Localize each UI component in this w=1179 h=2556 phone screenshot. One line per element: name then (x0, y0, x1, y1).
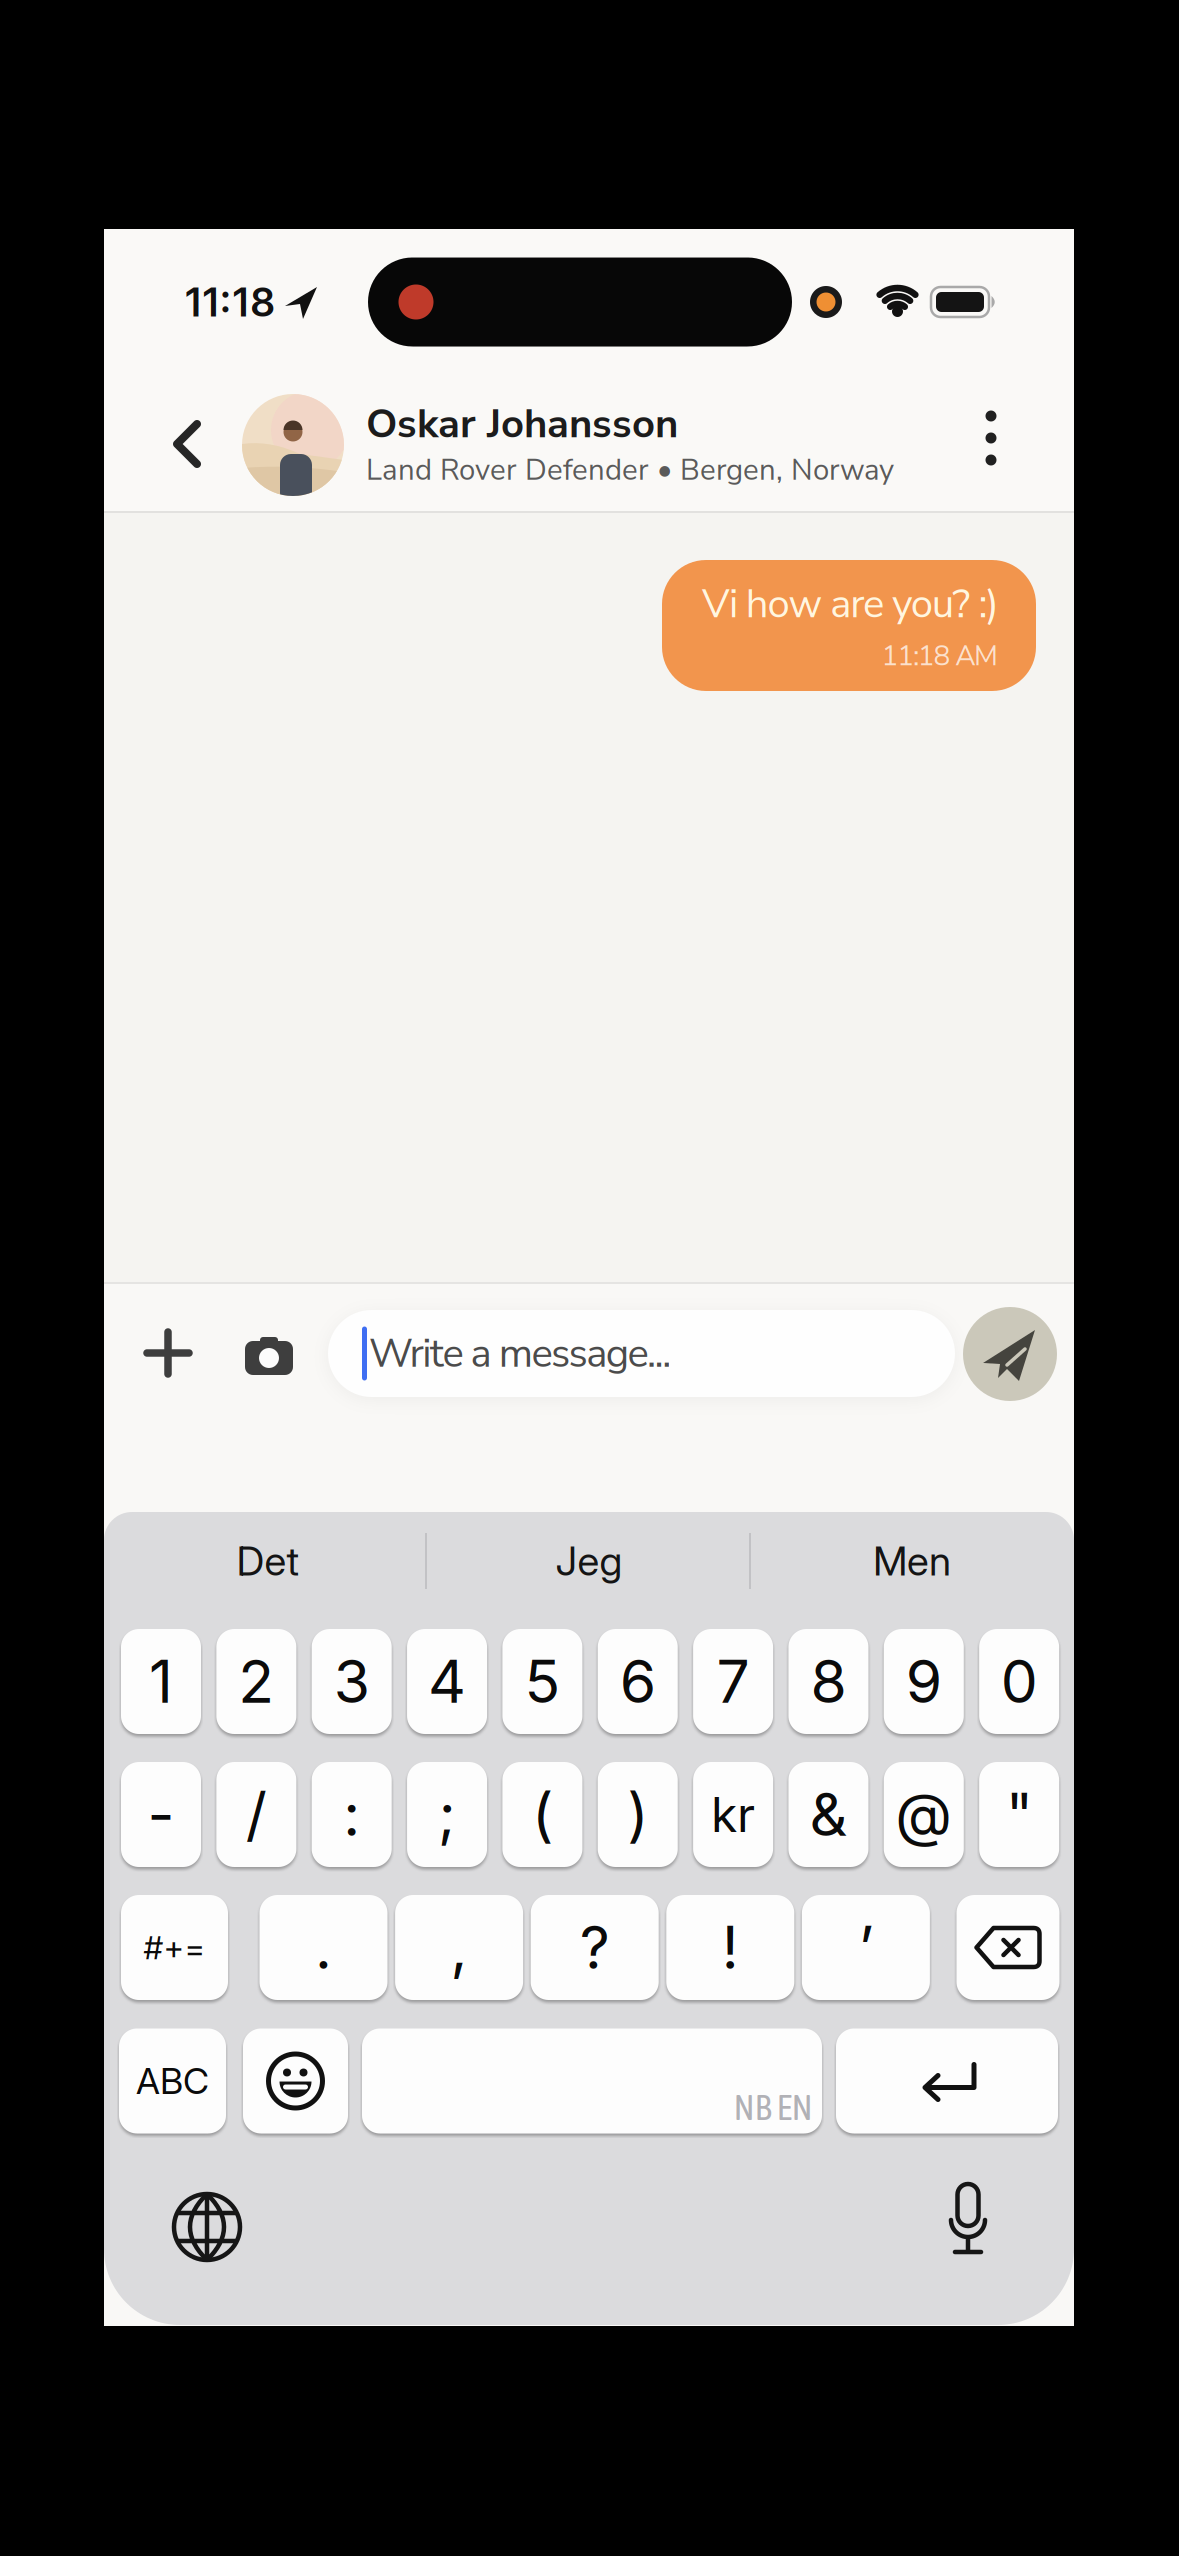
button[interactable]: Land Rover Defender • Bergen, Norway (366, 450, 966, 490)
button[interactable]: Write a message (328, 1310, 955, 1397)
staticText: NB EN (733, 2086, 812, 2128)
staticText: - (147, 1779, 174, 1850)
button[interactable]: 6 (598, 1629, 678, 1734)
button[interactable]: & (788, 1762, 868, 1867)
button[interactable]: : (312, 1762, 392, 1867)
staticText: 2 (238, 1646, 274, 1717)
button[interactable]: 7 (693, 1629, 773, 1734)
staticText: 6 (620, 1646, 656, 1717)
staticText: " (1006, 1779, 1033, 1850)
button[interactable]: , (395, 1895, 523, 2000)
button[interactable]: Det (118, 1526, 418, 1596)
staticText: 0 (1001, 1646, 1038, 1717)
button[interactable]: Back (157, 404, 217, 484)
button[interactable]: Oskar Johansson (366, 400, 966, 448)
staticText: ? (580, 1912, 610, 1983)
staticText: ( (532, 1779, 553, 1850)
button[interactable]: ABC (119, 2028, 226, 2133)
button[interactable]: kr (693, 1762, 773, 1867)
staticText: Det (236, 1537, 299, 1585)
button[interactable]: ( (502, 1762, 582, 1867)
staticText: 4 (428, 1646, 466, 1717)
staticText: 1 (149, 1646, 173, 1717)
staticText: : (343, 1779, 360, 1850)
staticText: kr (711, 1785, 755, 1844)
staticText: 11:18 AM (881, 637, 998, 675)
button[interactable]: Emoji (243, 2028, 348, 2133)
staticText: @ (895, 1779, 952, 1850)
button[interactable]: Dictation (923, 2179, 1013, 2269)
button[interactable]: Send (963, 1307, 1057, 1401)
staticText: Jeg (555, 1537, 622, 1585)
button[interactable]: Delete (956, 1895, 1059, 2000)
staticText: ) (627, 1779, 648, 1850)
button[interactable]: #+= (121, 1895, 228, 2000)
button[interactable]: 5 (502, 1629, 582, 1734)
staticText: / (246, 1779, 267, 1850)
button[interactable]: ! (666, 1895, 794, 2000)
staticText: Men (873, 1537, 951, 1585)
button[interactable]: 3 (312, 1629, 392, 1734)
button[interactable]: ; (407, 1762, 487, 1867)
staticText: ’ (858, 1912, 873, 1983)
staticText: 8 (810, 1646, 846, 1717)
button[interactable]: @ (884, 1762, 964, 1867)
button[interactable]: Camera (234, 1318, 304, 1388)
staticText: , (451, 1912, 468, 1983)
button[interactable]: / (216, 1762, 296, 1867)
button[interactable]: ’ (802, 1895, 930, 2000)
button[interactable]: 0 (979, 1629, 1059, 1734)
button[interactable]: ) (598, 1762, 678, 1867)
staticText: Oskar Johansson (366, 397, 678, 451)
button[interactable]: 8 (788, 1629, 868, 1734)
staticText: Write a message... (369, 1326, 671, 1381)
button[interactable]: Jeg (439, 1526, 739, 1596)
staticText: 9 (906, 1646, 942, 1717)
button[interactable]: " (979, 1762, 1059, 1867)
button[interactable]: Return (836, 2028, 1058, 2133)
button[interactable]: 4 (407, 1629, 487, 1734)
button[interactable]: 9 (884, 1629, 964, 1734)
button[interactable]: - (121, 1762, 201, 1867)
staticText: ; (438, 1779, 456, 1850)
button[interactable]: 1 (121, 1629, 201, 1734)
button[interactable]: More options (961, 393, 1021, 483)
button[interactable]: . (259, 1895, 387, 2000)
button[interactable]: Add attachment (133, 1318, 203, 1388)
staticText: 5 (524, 1646, 560, 1717)
button[interactable]: Men (762, 1526, 1062, 1596)
staticText: 7 (717, 1646, 750, 1717)
button[interactable]: Space (362, 2028, 822, 2133)
staticText: 3 (334, 1646, 370, 1717)
button[interactable]: 2 (216, 1629, 296, 1734)
button[interactable]: ? (531, 1895, 659, 2000)
staticText: 11:18 (185, 278, 274, 326)
staticText: & (809, 1779, 847, 1850)
staticText: Vi how are you? :) (702, 577, 999, 631)
staticText: . (315, 1912, 332, 1983)
staticText: Land Rover Defender • Bergen, Norway (366, 450, 894, 490)
button[interactable]: Profile photo (242, 394, 344, 496)
staticText: ABC (136, 2059, 209, 2103)
staticText: #+= (143, 1928, 205, 1967)
button[interactable]: Next keyboard (162, 2182, 252, 2272)
staticText: ! (722, 1912, 739, 1983)
